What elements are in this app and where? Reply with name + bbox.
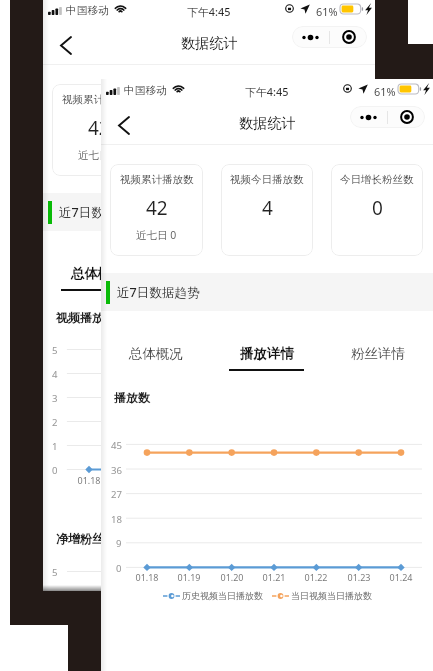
staticText: 01.18 (131, 571, 163, 583)
button[interactable]: 粉丝详情 (264, 231, 375, 293)
staticText: 18 (111, 513, 122, 526)
button[interactable]: Back (48, 27, 84, 63)
staticText: 45 (111, 439, 122, 452)
staticText: 视频今日播放数 (230, 173, 304, 186)
staticText: 总体概况 (129, 345, 183, 362)
staticText: 中国移动 (66, 4, 109, 17)
button[interactable]: Close (330, 26, 367, 48)
staticText: 下午4:45 (245, 84, 289, 99)
staticText: 总体概况 (71, 265, 125, 282)
staticText: 今日增长粉丝数 (282, 93, 356, 106)
button[interactable]: 总体概况 (101, 311, 211, 373)
staticText: 视频累计播放数 (62, 93, 136, 106)
staticText: 5 (52, 566, 58, 579)
button[interactable]: Back (106, 107, 142, 143)
button[interactable]: 视频累计播放数 (52, 84, 145, 176)
staticText: 0 (372, 195, 383, 221)
staticText: 01.19 (173, 571, 205, 583)
button[interactable]: 粉丝详情 (322, 311, 433, 373)
staticText: 3 (52, 392, 58, 405)
staticText: 36 (111, 464, 122, 477)
staticText: 01.22 (300, 571, 332, 583)
staticText: 27 (111, 488, 122, 501)
staticText: 粉丝详情 (293, 265, 347, 282)
staticText: 42 (146, 195, 168, 221)
staticText: 9 (116, 537, 122, 550)
staticText: 近7日数据趋势 (59, 204, 142, 221)
staticText: 0 (52, 464, 58, 477)
staticText: 5 (52, 344, 58, 357)
staticText: 播放数 (114, 390, 150, 405)
staticText: 01.24 (385, 571, 417, 583)
staticText: 播放详情 (182, 265, 236, 282)
staticText: 数据统计 (239, 114, 296, 132)
staticText: 视频累计播放数 (120, 173, 194, 186)
staticText: 2 (52, 416, 58, 429)
staticText: 01.18 (73, 474, 105, 486)
staticText: 近7日数据趋势 (117, 284, 200, 301)
staticText: 4 (52, 368, 58, 381)
staticText: 61% (374, 84, 396, 99)
button[interactable]: 视频累计播放数 (110, 164, 203, 256)
staticText: 今日增长粉丝数 (340, 173, 414, 186)
staticText: 当日视频当日播放数 (291, 590, 372, 601)
staticText: 粉丝详情 (351, 345, 405, 362)
staticText: 数据统计 (181, 34, 238, 52)
staticText: 视频播放数 (56, 310, 116, 325)
button[interactable]: 播放详情 (153, 231, 264, 293)
staticText: 播放详情 (240, 345, 294, 362)
button[interactable]: 视频今日播放数 (221, 164, 313, 256)
staticText: 中国移动 (124, 84, 167, 97)
button[interactable]: 视频今日播放数 (163, 84, 255, 176)
staticText: 0 (116, 562, 122, 575)
staticText: 历史视频当日播放数 (182, 590, 263, 601)
button[interactable]: 总体概况 (43, 231, 153, 293)
staticText: 42 (88, 115, 110, 141)
staticText: 61% (316, 4, 338, 19)
staticText: 4 (262, 195, 273, 221)
button[interactable]: More options (350, 106, 387, 128)
button[interactable]: 播放详情 (211, 311, 322, 373)
button[interactable]: 今日增长粉丝数 (273, 84, 365, 176)
staticText: 近七日 0 (136, 228, 177, 242)
staticText: 01.20 (216, 571, 248, 583)
staticText: 1 (52, 440, 58, 453)
staticText: 01.23 (343, 571, 375, 583)
staticText: 下午4:45 (187, 4, 231, 19)
staticText: 01.21 (258, 571, 290, 583)
staticText: 净增粉丝数 (56, 531, 116, 546)
staticText: 近七日 0 (78, 148, 119, 162)
button[interactable]: More options (292, 26, 329, 48)
button[interactable]: Close (388, 106, 425, 128)
button[interactable]: 今日增长粉丝数 (331, 164, 423, 256)
